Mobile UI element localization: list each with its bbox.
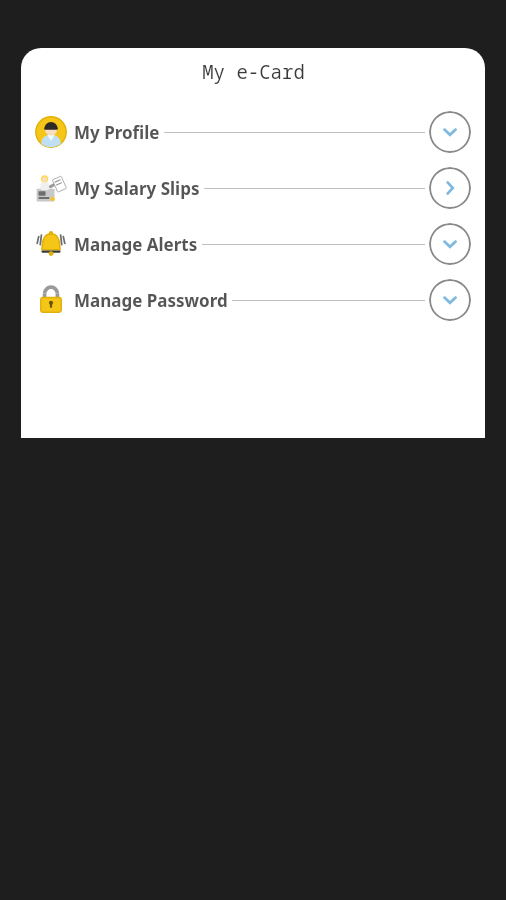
button[interactable]: My Profile (21, 104, 485, 160)
staticText: Manage Password (74, 289, 228, 312)
button[interactable]: Open My Salary Slips (429, 167, 471, 209)
button[interactable]: Manage Alerts (21, 216, 485, 272)
button[interactable]: Expand My Profile (429, 111, 471, 153)
staticText: My Salary Slips (74, 177, 200, 200)
button[interactable]: Expand Manage Alerts (429, 223, 471, 265)
staticText: My Profile (74, 121, 160, 144)
staticText: Manage Alerts (74, 233, 198, 256)
staticText: My e-Card (202, 59, 305, 85)
button[interactable]: Expand Manage Password (429, 279, 471, 321)
button[interactable]: Manage Password (21, 272, 485, 328)
button[interactable]: My Salary Slips (21, 160, 485, 216)
